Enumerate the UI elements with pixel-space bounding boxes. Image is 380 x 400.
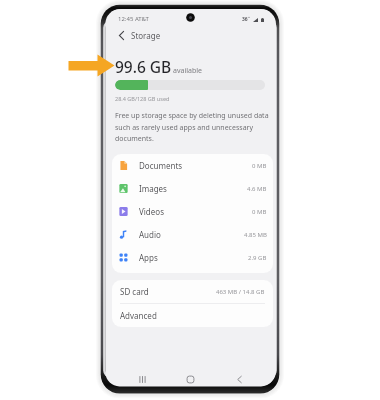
button[interactable]: Back [106, 28, 276, 42]
button[interactable]: Home [166, 369, 215, 386]
staticText: Images [139, 183, 167, 194]
button[interactable]: Back [116, 30, 127, 41]
button[interactable]: Back [215, 369, 264, 386]
button[interactable]: Images [112, 177, 273, 200]
staticText: Free up storage space by deleting unused… [115, 111, 275, 143]
staticText: 99.6 GB [115, 56, 172, 77]
button[interactable]: Advanced [112, 304, 273, 327]
staticText: Documents [139, 160, 183, 171]
staticText: Storage [131, 30, 161, 41]
staticText: 12:45 AT&T [118, 15, 149, 23]
staticText: 4.6 MB [247, 185, 267, 193]
staticText: 36 [242, 16, 248, 23]
button[interactable]: SD card [112, 280, 273, 303]
staticText: available [173, 66, 203, 76]
button[interactable]: Videos [112, 200, 273, 223]
staticText: 0 MB [252, 208, 267, 216]
staticText: Audio [139, 229, 161, 240]
staticText: 28.4 GB/128 GB used [115, 95, 170, 102]
staticText: Advanced [120, 310, 157, 321]
staticText: SD card [120, 286, 149, 297]
staticText: Videos [139, 206, 164, 217]
staticText: Apps [139, 252, 158, 263]
staticText: 463 MB / 14.8 GB [216, 288, 265, 296]
button[interactable]: Documents [112, 154, 273, 177]
staticText: 4.85 MB [244, 231, 267, 239]
button[interactable]: Apps [112, 246, 273, 269]
staticText: 0 MB [252, 162, 267, 170]
button[interactable]: Audio [112, 223, 273, 246]
staticText: 2.9 GB [248, 254, 267, 262]
button[interactable]: Recent apps [118, 369, 166, 386]
